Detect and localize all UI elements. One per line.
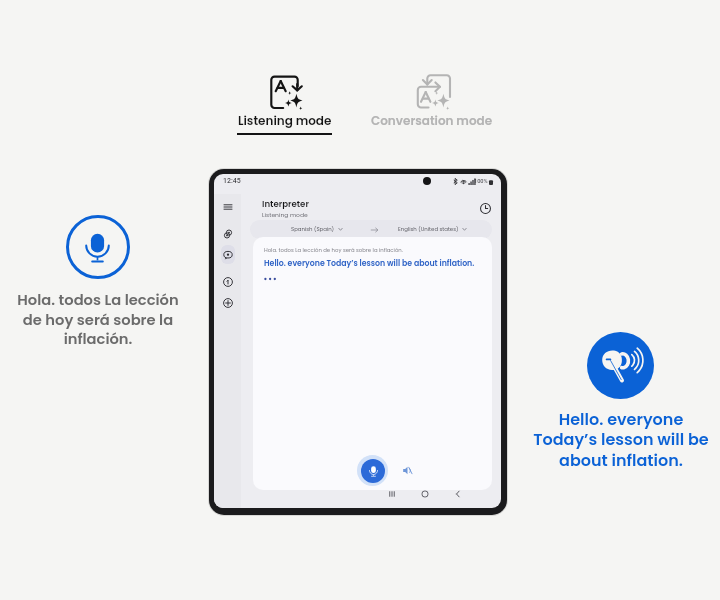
- button[interactable]: Microphone: [357, 455, 388, 486]
- staticText: Hello. everyone Today’s lesson will be a…: [264, 258, 475, 269]
- staticText: Listening mode: [238, 112, 332, 129]
- staticText: Hola. todos La lección de hoy será sobre…: [264, 246, 403, 253]
- button[interactable]: History: [478, 201, 492, 215]
- staticText: 100%: [474, 178, 488, 185]
- button[interactable]: Home: [418, 487, 432, 501]
- button[interactable]: Translate: [221, 224, 235, 243]
- button[interactable]: Info: [221, 272, 235, 291]
- button[interactable]: Spanish (Spain): [291, 225, 343, 233]
- button[interactable]: Mute: [400, 463, 415, 478]
- staticText: Interpreter: [262, 198, 309, 210]
- button[interactable]: Listening mode: [237, 73, 332, 134]
- button[interactable]: Conversation mode: [370, 73, 494, 132]
- button[interactable]: Back: [451, 487, 465, 501]
- staticText: Listening mode: [262, 211, 308, 219]
- staticText: Hola. todos La lección de hoy será sobre…: [17, 290, 179, 349]
- staticText: Conversation mode: [371, 112, 493, 129]
- button[interactable]: Add: [221, 293, 235, 312]
- button[interactable]: Recents: [385, 487, 399, 501]
- button[interactable]: Menu: [221, 197, 235, 216]
- staticText: 12:45: [223, 177, 241, 185]
- staticText: Hello. everyone Today’s lesson will be a…: [533, 408, 709, 472]
- staticText: Spanish (Spain): [291, 225, 335, 233]
- button[interactable]: Interpreter: [221, 245, 235, 264]
- button[interactable]: English (United states): [398, 225, 467, 233]
- staticText: English (United states): [398, 225, 459, 233]
